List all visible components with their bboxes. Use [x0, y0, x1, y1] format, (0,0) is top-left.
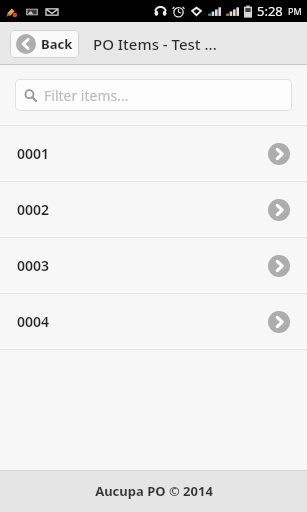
staticText: 5:28	[257, 2, 283, 20]
button[interactable]: 0001	[0, 126, 307, 181]
staticText: PO Items - Test ...	[93, 34, 217, 54]
staticText: 0003	[17, 256, 268, 275]
staticText: 0001	[17, 144, 268, 163]
button[interactable]: 0002	[0, 182, 307, 237]
staticText: 0002	[17, 200, 268, 219]
other: Open 0001	[268, 143, 290, 165]
staticText: 0004	[17, 312, 268, 331]
other: Open 0004	[268, 311, 290, 333]
button[interactable]: Filter items...	[15, 79, 292, 111]
other: Open 0003	[268, 255, 290, 277]
staticText: Filter items...	[44, 86, 129, 105]
staticText: Aucupa PO © 2014	[95, 482, 213, 500]
staticText: PM	[288, 5, 302, 17]
button[interactable]: 0003	[0, 238, 307, 293]
staticText: Back	[41, 35, 73, 53]
button[interactable]: Back	[10, 30, 79, 58]
other: Open 0002	[268, 199, 290, 221]
button[interactable]: 0004	[0, 294, 307, 349]
